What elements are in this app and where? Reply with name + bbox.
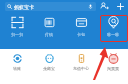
button[interactable]: 淘票票 <box>97 52 128 74</box>
staticText: 充值中心 <box>73 66 89 71</box>
staticText: 转账 <box>13 66 21 71</box>
button[interactable]: 扫一扫 <box>1 14 33 42</box>
staticText: 淘票票 <box>107 66 119 71</box>
button[interactable]: 余额宝 <box>33 52 65 74</box>
staticText: 咻一咻 <box>107 32 119 37</box>
button[interactable]: Add <box>114 0 127 13</box>
button[interactable]: 充值中心 <box>65 52 97 74</box>
button[interactable]: 蚂蚁宝卡 <box>5 2 96 11</box>
staticText: 蚂蚁宝卡 <box>14 4 34 10</box>
button[interactable]: 咻一咻 <box>97 14 128 42</box>
button[interactable]: 转账 <box>1 52 33 74</box>
button[interactable]: 付钱 <box>33 14 65 42</box>
button[interactable]: 卡包 <box>65 14 97 42</box>
staticText: 扫一扫 <box>11 32 23 37</box>
staticText: 余额宝 <box>43 66 55 71</box>
staticText: 卡包 <box>77 32 85 37</box>
staticText: 付钱 <box>45 32 53 37</box>
button[interactable]: Add friends <box>98 0 111 13</box>
